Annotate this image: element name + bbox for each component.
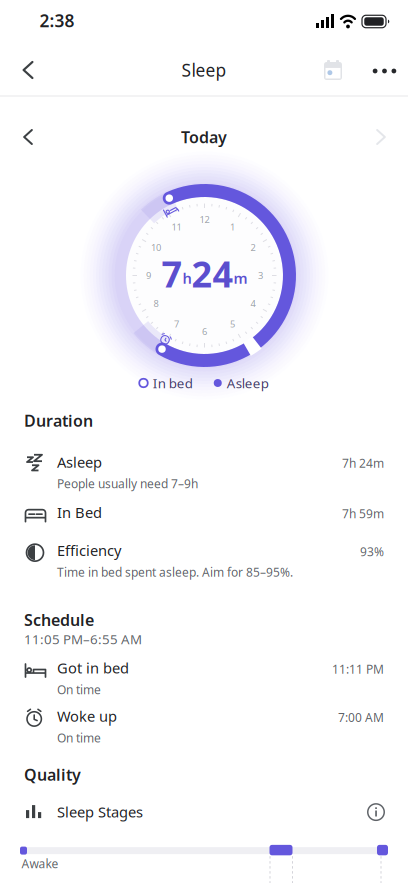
staticText: Duration — [24, 410, 93, 431]
staticText: 24 — [191, 250, 233, 297]
staticText: 7 — [174, 318, 179, 330]
button[interactable]: Back — [6, 46, 50, 94]
staticText: Got in bed — [57, 658, 129, 677]
staticText: Awake — [21, 856, 58, 871]
staticText: 7h 59m — [342, 506, 384, 522]
button[interactable]: Asleep — [0, 452, 408, 492]
staticText: 11 — [171, 221, 181, 233]
staticText: On time — [57, 681, 101, 697]
staticText: 6 — [202, 325, 207, 338]
button[interactable]: About sleep stages — [364, 800, 388, 824]
staticText: 7h 24m — [342, 455, 384, 471]
staticText: 9 — [146, 269, 151, 282]
staticText: h — [182, 268, 191, 288]
staticText: Today — [181, 126, 227, 148]
staticText: On time — [57, 730, 101, 746]
staticText: 8 — [153, 297, 158, 310]
staticText: People usually need 7–9h — [57, 476, 198, 492]
staticText: 10 — [151, 241, 161, 254]
staticText: 7 — [161, 250, 182, 297]
staticText: Woke up — [57, 706, 117, 726]
staticText: Sleep Stages — [57, 802, 143, 822]
button[interactable]: Efficiency — [0, 541, 408, 580]
button[interactable]: Previous day — [6, 113, 50, 161]
button[interactable]: In Bed — [0, 503, 408, 527]
staticText: Sleep — [181, 58, 226, 81]
staticText: 93% — [360, 544, 384, 560]
staticText: 11:11 PM — [332, 661, 384, 677]
staticText: Asleep — [57, 452, 102, 472]
staticText: In bed — [153, 374, 193, 392]
staticText: 5 — [230, 318, 235, 330]
staticText: 2 — [250, 241, 255, 254]
staticText: 7:00 AM — [338, 709, 384, 725]
staticText: Efficiency — [57, 541, 121, 560]
staticText: Quality — [24, 764, 81, 785]
staticText: 1 — [230, 221, 235, 233]
button[interactable]: Woke up — [0, 706, 408, 746]
staticText: 3 — [258, 269, 263, 282]
staticText: m — [233, 268, 247, 288]
button[interactable]: Calendar — [321, 58, 345, 82]
staticText: 4 — [250, 297, 255, 310]
staticText: Asleep — [227, 374, 269, 392]
staticText: 12 — [199, 213, 209, 226]
staticText: 11:05 PM–6:55 AM — [24, 630, 142, 648]
staticText: Time in bed spent asleep. Aim for 85–95%… — [57, 564, 293, 580]
staticText: In Bed — [57, 503, 102, 522]
button[interactable]: Sleep Stages — [0, 800, 408, 824]
button[interactable]: More options — [364, 51, 404, 91]
staticText: Schedule — [24, 609, 94, 630]
staticText: 2:38 — [39, 9, 74, 32]
button[interactable]: Next day — [359, 113, 403, 161]
button[interactable]: Got in bed — [0, 658, 408, 697]
